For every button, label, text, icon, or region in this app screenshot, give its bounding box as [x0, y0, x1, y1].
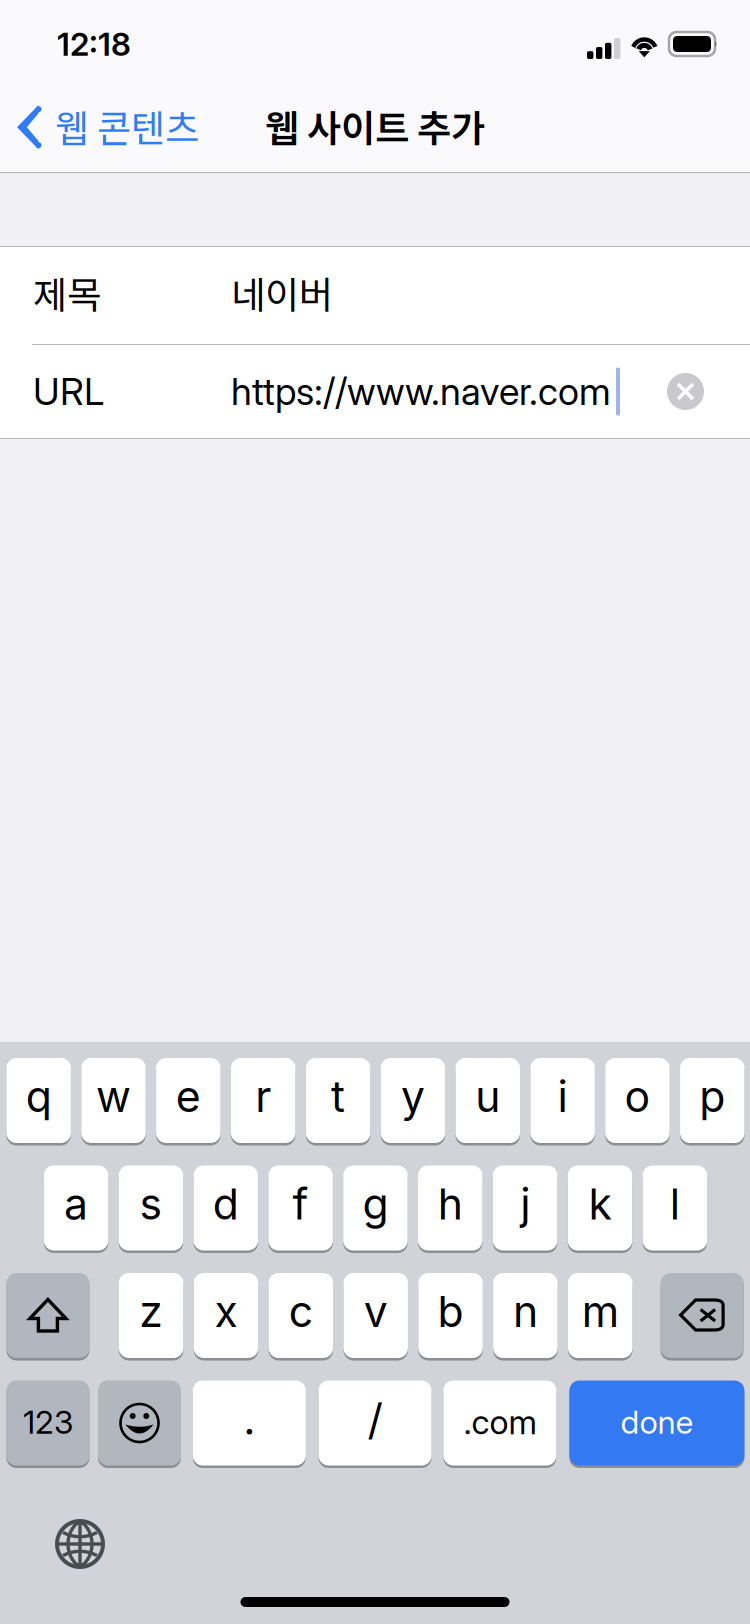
- button[interactable]: w: [81, 1058, 146, 1145]
- staticText: 웹 콘텐츠: [55, 99, 199, 153]
- button[interactable]: p: [680, 1058, 744, 1145]
- staticText: 제목: [33, 265, 101, 320]
- staticText: .com: [463, 1402, 536, 1442]
- staticText: y: [401, 1071, 425, 1122]
- staticText: q: [26, 1071, 52, 1122]
- staticText: j: [520, 1178, 530, 1230]
- button[interactable]: x: [194, 1273, 258, 1360]
- staticText: f: [293, 1178, 309, 1230]
- button[interactable]: h: [418, 1165, 483, 1253]
- staticText: 웹 사이트 추가: [265, 99, 485, 153]
- button[interactable]: t: [306, 1058, 370, 1145]
- staticText: w: [96, 1071, 131, 1122]
- button[interactable]: b: [418, 1273, 483, 1360]
- staticText: https://www.naver.com: [231, 369, 611, 414]
- button[interactable]: d: [193, 1165, 258, 1253]
- staticText: t: [331, 1071, 345, 1122]
- staticText: h: [438, 1178, 463, 1230]
- staticText: .: [243, 1393, 255, 1445]
- staticText: o: [624, 1071, 650, 1122]
- button[interactable]: k: [568, 1165, 632, 1253]
- button[interactable]: 제목: [0, 247, 750, 344]
- staticText: m: [582, 1286, 619, 1337]
- button[interactable]: f: [268, 1165, 333, 1253]
- button[interactable]: u: [455, 1058, 520, 1145]
- staticText: 네이버: [231, 265, 333, 320]
- button[interactable]: v: [343, 1273, 408, 1360]
- staticText: l: [670, 1178, 680, 1230]
- button[interactable]: .: [193, 1380, 306, 1468]
- staticText: s: [139, 1178, 162, 1230]
- staticText: a: [64, 1178, 88, 1230]
- staticText: 123: [23, 1403, 73, 1441]
- staticText: u: [475, 1071, 500, 1122]
- button[interactable]: g: [343, 1165, 408, 1253]
- button[interactable]: o: [605, 1058, 670, 1145]
- staticText: b: [437, 1286, 463, 1337]
- button[interactable]: Emoji: [98, 1380, 181, 1468]
- button[interactable]: n: [493, 1273, 558, 1360]
- button[interactable]: q: [6, 1058, 71, 1145]
- button[interactable]: 웹 콘텐츠: [0, 88, 211, 172]
- button[interactable]: m: [568, 1273, 632, 1360]
- button[interactable]: r: [231, 1058, 295, 1145]
- staticText: d: [213, 1178, 239, 1230]
- button[interactable]: a: [44, 1165, 108, 1253]
- staticText: e: [176, 1071, 201, 1122]
- staticText: r: [255, 1071, 271, 1122]
- staticText: done: [620, 1403, 693, 1441]
- staticText: c: [289, 1286, 313, 1337]
- staticText: k: [588, 1178, 611, 1230]
- button[interactable]: l: [643, 1165, 707, 1253]
- staticText: n: [513, 1286, 538, 1337]
- button[interactable]: y: [381, 1058, 445, 1145]
- staticText: 12:18: [57, 25, 131, 63]
- staticText: p: [699, 1071, 725, 1122]
- button[interactable]: Shift: [6, 1273, 89, 1360]
- staticText: x: [214, 1286, 237, 1337]
- staticText: v: [364, 1286, 388, 1337]
- button[interactable]: URL: [0, 345, 750, 438]
- button[interactable]: c: [269, 1273, 333, 1360]
- button[interactable]: Next keyboard: [52, 1516, 108, 1572]
- staticText: i: [558, 1071, 568, 1122]
- button[interactable]: done: [569, 1380, 744, 1468]
- button[interactable]: z: [119, 1273, 183, 1360]
- button[interactable]: 123: [6, 1380, 89, 1468]
- staticText: z: [139, 1286, 163, 1337]
- button[interactable]: j: [493, 1165, 557, 1253]
- staticText: /: [368, 1393, 383, 1445]
- button[interactable]: e: [156, 1058, 221, 1145]
- staticText: g: [362, 1178, 388, 1230]
- button[interactable]: .com: [443, 1380, 556, 1468]
- staticText: URL: [33, 369, 104, 414]
- button[interactable]: i: [530, 1058, 595, 1145]
- button[interactable]: /: [319, 1380, 432, 1468]
- button[interactable]: s: [119, 1165, 183, 1253]
- button[interactable]: Delete: [661, 1273, 744, 1360]
